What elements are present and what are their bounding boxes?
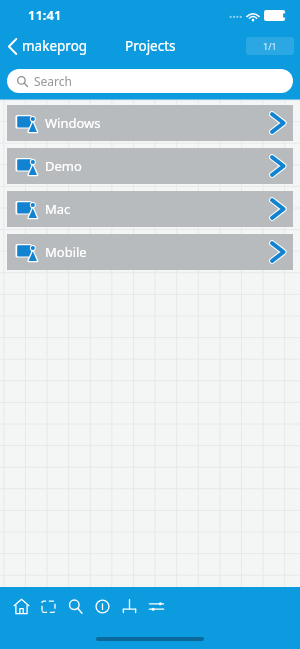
staticText: Projects bbox=[125, 37, 176, 55]
staticText: 11:41 bbox=[28, 6, 62, 24]
button[interactable]: Info bbox=[90, 594, 114, 618]
button[interactable]: Search bbox=[7, 69, 293, 93]
staticText: Search bbox=[34, 73, 72, 89]
button[interactable]: 1/1 bbox=[246, 37, 294, 55]
button[interactable]: Home bbox=[9, 594, 33, 618]
staticText: Demo bbox=[45, 157, 82, 175]
button[interactable]: Mac bbox=[7, 191, 293, 227]
button[interactable]: Measure bbox=[117, 594, 141, 618]
staticText: Mobile bbox=[45, 243, 87, 261]
button[interactable]: makeprog bbox=[0, 33, 96, 59]
button[interactable]: Mobile bbox=[7, 234, 293, 270]
staticText: Mac bbox=[45, 200, 71, 218]
button[interactable]: Select area bbox=[36, 594, 60, 618]
staticText: Windows bbox=[45, 114, 101, 132]
button[interactable]: Settings bbox=[144, 594, 168, 618]
button[interactable]: Windows bbox=[7, 105, 293, 141]
staticText: 1/1 bbox=[263, 40, 277, 52]
button[interactable]: Search bbox=[63, 594, 87, 618]
staticText: makeprog bbox=[22, 37, 88, 55]
button[interactable]: Demo bbox=[7, 148, 293, 184]
